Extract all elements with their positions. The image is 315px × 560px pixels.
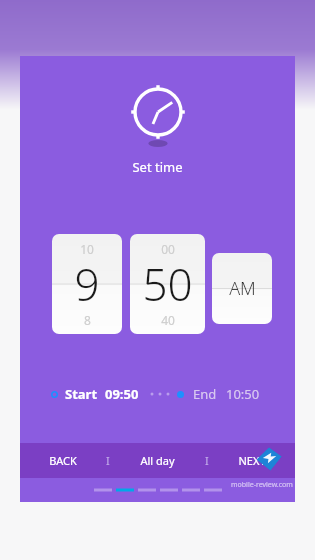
button[interactable]: BACK — [20, 443, 106, 478]
staticText: 40 — [161, 312, 175, 328]
staticText: mobile-review.com — [231, 480, 293, 490]
staticText: 10 — [80, 241, 94, 257]
button[interactable]: All day — [110, 443, 205, 478]
staticText: End — [193, 385, 217, 403]
staticText: AM — [229, 276, 256, 301]
staticText: I — [205, 453, 209, 468]
staticText: Start — [65, 385, 98, 403]
staticText: NEXT — [238, 453, 266, 468]
staticText: Set time — [132, 158, 183, 176]
button[interactable]: End — [175, 385, 262, 403]
staticText: BACK — [49, 453, 77, 468]
button[interactable]: NEXT — [209, 443, 295, 478]
staticText: 50 — [142, 254, 193, 314]
button[interactable]: Hour — [52, 234, 122, 334]
staticText: 10:50 — [226, 385, 260, 403]
staticText: 9 — [74, 254, 100, 314]
staticText: 8 — [84, 312, 91, 328]
staticText: 09:50 — [105, 385, 139, 403]
button[interactable]: Start — [49, 385, 141, 403]
staticText: 00 — [161, 241, 175, 257]
button[interactable]: AM/PM — [212, 253, 272, 324]
staticText: I — [106, 453, 110, 468]
staticText: All day — [140, 453, 175, 468]
button[interactable]: Minute — [130, 234, 205, 334]
